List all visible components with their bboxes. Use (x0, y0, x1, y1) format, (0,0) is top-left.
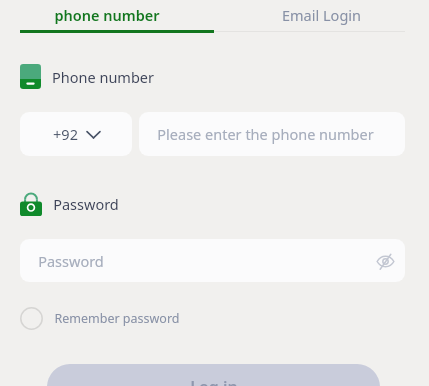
staticText: Please enter the phone number (157, 124, 374, 144)
button[interactable]: Show password (365, 241, 405, 281)
staticText: Password (53, 194, 119, 214)
button[interactable]: Log in (47, 364, 380, 386)
staticText: +92 (53, 124, 78, 144)
button[interactable]: Email Login (214, 0, 429, 30)
button[interactable]: Password (20, 239, 405, 282)
button[interactable]: Please enter the phone number (139, 112, 405, 156)
staticText: Log in (190, 376, 238, 386)
staticText: Password (38, 251, 104, 271)
button[interactable]: Remember password (20, 307, 180, 330)
button[interactable]: phone number (0, 0, 214, 30)
staticText: Remember password (54, 310, 180, 327)
staticText: phone number (54, 5, 160, 25)
button[interactable]: +92 (20, 112, 132, 156)
staticText: Phone number (52, 67, 154, 87)
staticText: Email Login (282, 5, 361, 25)
